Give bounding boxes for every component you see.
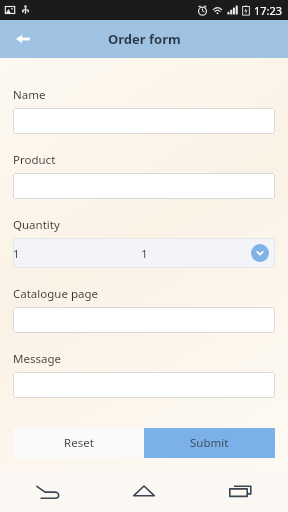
- button[interactable]: [13, 108, 275, 134]
- staticText: Message: [13, 351, 61, 367]
- staticText: Submit: [190, 435, 229, 451]
- button[interactable]: [13, 307, 275, 333]
- staticText: 1: [141, 246, 148, 261]
- button[interactable]: Back: [0, 470, 96, 512]
- button[interactable]: Reset: [13, 428, 144, 458]
- button[interactable]: Recent apps: [192, 470, 288, 512]
- staticText: 1: [13, 246, 275, 261]
- button[interactable]: Home: [96, 470, 192, 512]
- button[interactable]: Open quantity dropdown: [251, 244, 269, 262]
- staticText: Product: [13, 152, 56, 168]
- button[interactable]: [13, 372, 275, 398]
- button[interactable]: 1: [13, 238, 275, 268]
- button[interactable]: [13, 173, 275, 199]
- staticText: Quantity: [13, 217, 60, 233]
- staticText: Catalogue page: [13, 286, 98, 302]
- button[interactable]: Submit: [144, 428, 275, 458]
- staticText: Reset: [64, 435, 94, 451]
- staticText: Order form: [108, 30, 181, 48]
- staticText: 17:23: [254, 3, 283, 18]
- button[interactable]: Back: [8, 24, 38, 54]
- staticText: Name: [13, 87, 46, 103]
